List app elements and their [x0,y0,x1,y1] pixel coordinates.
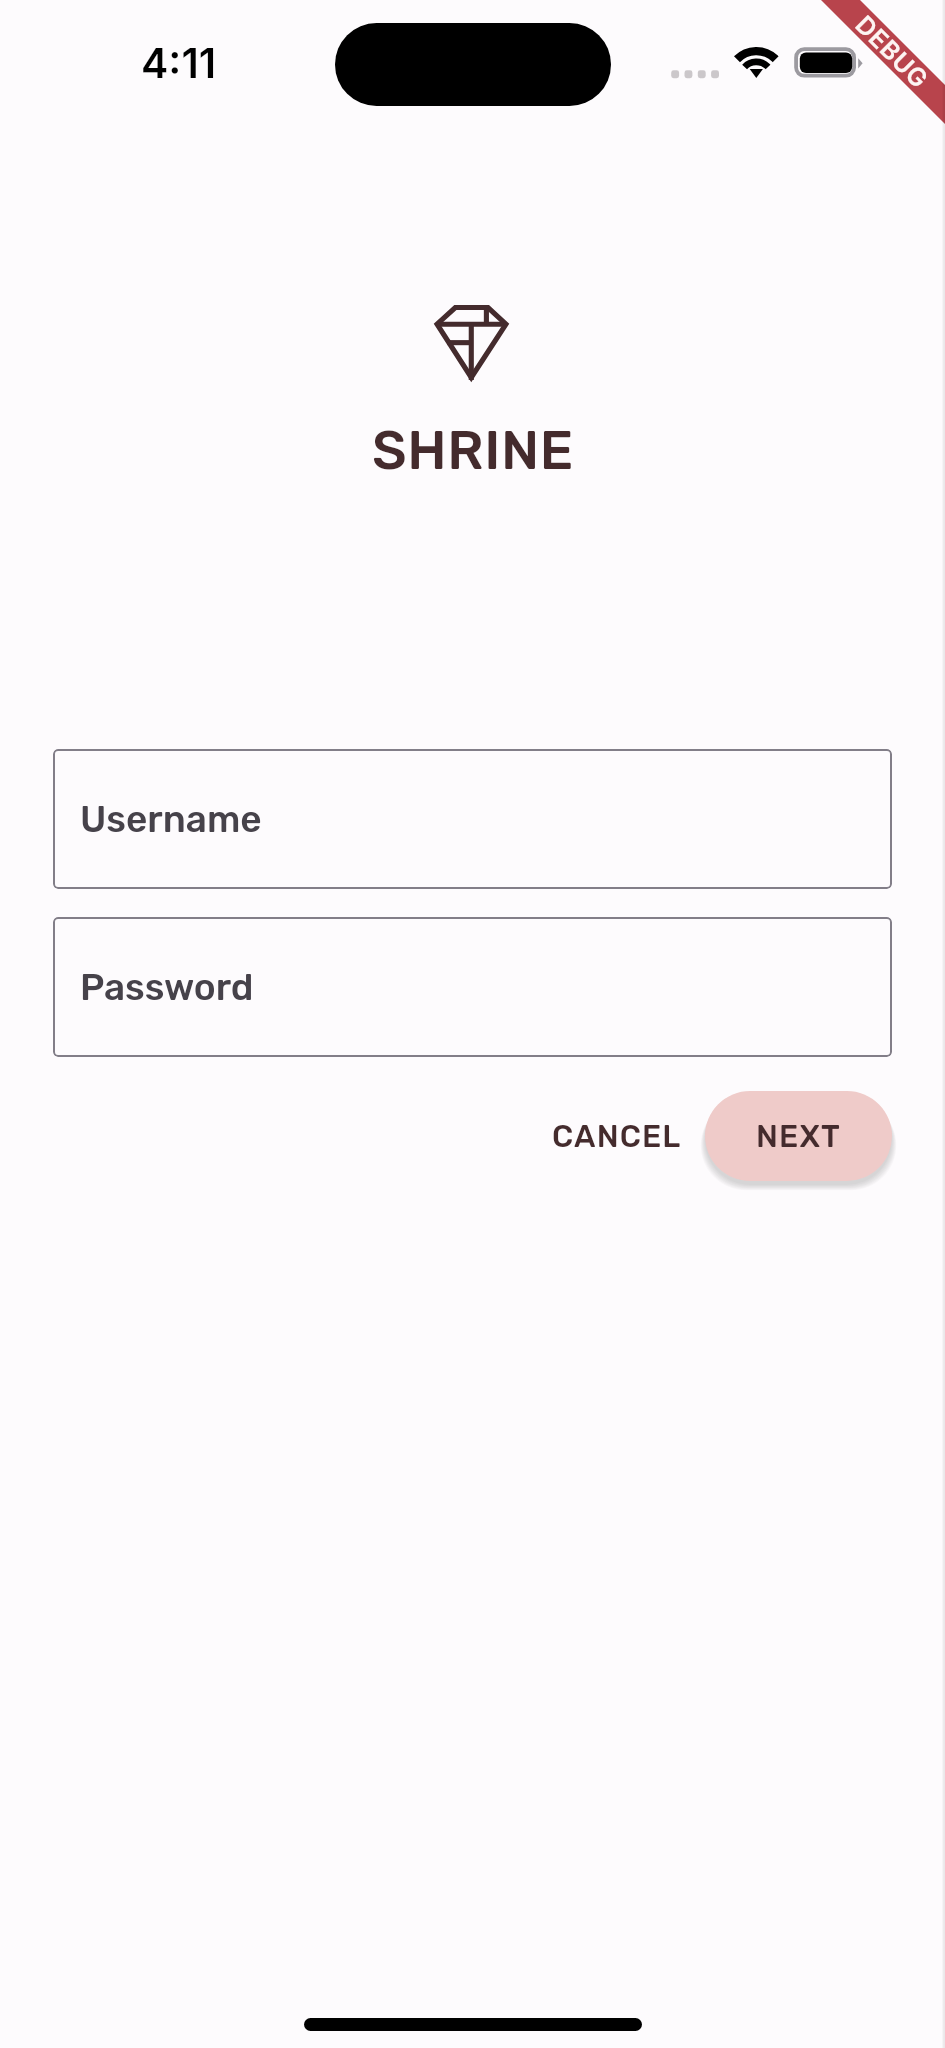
staticText: NEXT [756,1118,841,1155]
button[interactable]: Username [53,749,892,889]
button[interactable]: NEXT [705,1091,892,1181]
staticText: Username [80,797,262,841]
staticText: CANCEL [552,1118,682,1155]
staticText: Password [80,965,254,1009]
button[interactable]: Password [53,917,892,1057]
staticText: SHRINE [372,419,574,483]
staticText: 4:11 [141,38,217,88]
staticText: DEBUG [850,10,934,94]
button[interactable]: CANCEL [518,1091,705,1181]
